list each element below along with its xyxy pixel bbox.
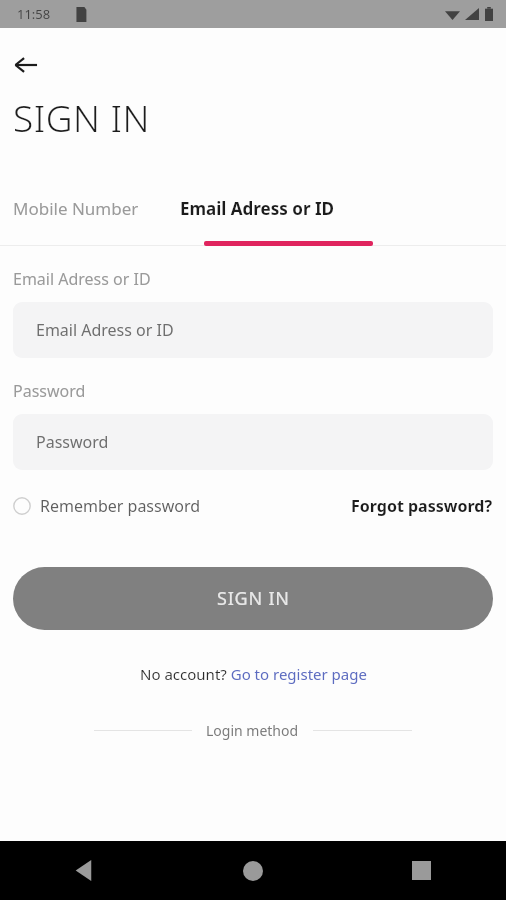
button[interactable]: SIGN IN — [13, 567, 493, 630]
staticText: Email Adress or ID — [180, 197, 334, 220]
staticText: 11:58 — [17, 5, 51, 23]
button[interactable]: Email Adress or ID — [13, 302, 493, 358]
staticText: SIGN IN — [217, 586, 290, 611]
staticText: Login method — [206, 721, 299, 740]
staticText: No account? Go to register page — [140, 664, 367, 684]
staticText: Mobile Number — [13, 197, 139, 220]
staticText: SIGN IN — [13, 92, 151, 142]
button[interactable]: Back — [0, 841, 168, 900]
staticText: Email Adress or ID — [13, 268, 151, 290]
button[interactable]: Recent apps — [337, 841, 506, 900]
button[interactable]: Back — [5, 44, 47, 86]
staticText: Password — [36, 431, 109, 453]
button[interactable]: Remember password — [13, 495, 201, 517]
button[interactable]: Forgot password? — [351, 495, 493, 517]
staticText: Email Adress or ID — [36, 319, 174, 341]
button[interactable]: Mobile Number — [0, 191, 152, 226]
staticText: Forgot password? — [351, 495, 493, 517]
staticText: Remember password — [40, 495, 201, 517]
button[interactable]: Password — [13, 414, 493, 470]
staticText: Password — [13, 380, 86, 402]
button[interactable]: Home — [168, 841, 337, 900]
button[interactable]: No account? Go to register page — [136, 660, 371, 688]
button[interactable]: Email Adress or ID — [180, 191, 334, 226]
